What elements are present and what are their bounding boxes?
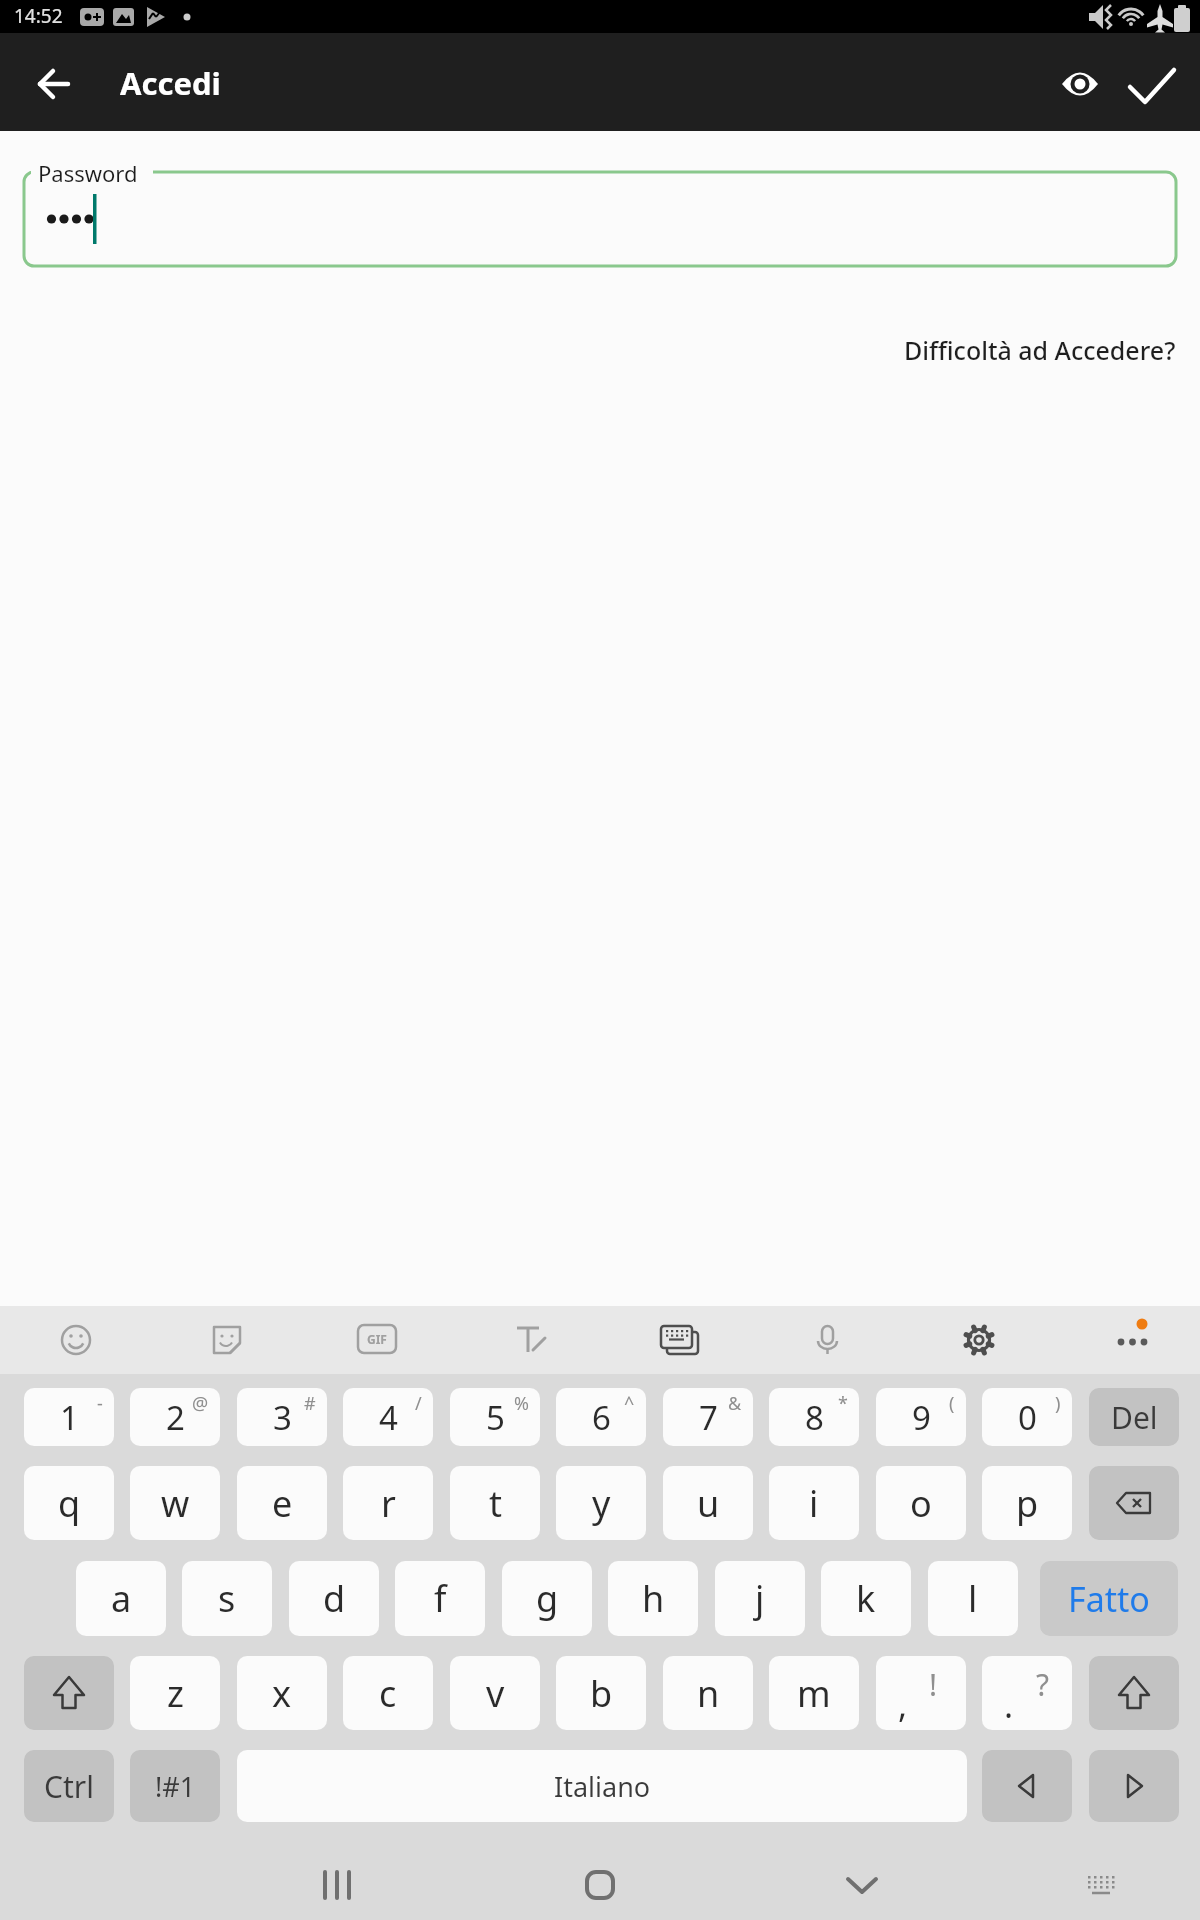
button[interactable]: s	[182, 1561, 272, 1636]
staticText: d	[323, 1574, 346, 1623]
staticText: 1	[60, 1395, 79, 1440]
staticText: Del	[1111, 1397, 1158, 1438]
staticText: c	[379, 1669, 397, 1718]
staticText: h	[642, 1574, 665, 1623]
staticText: q	[58, 1479, 81, 1528]
button[interactable]: 1	[24, 1388, 114, 1446]
button[interactable]: Fatto	[1040, 1561, 1178, 1636]
button[interactable]: m	[769, 1656, 859, 1730]
staticText: 8	[805, 1395, 824, 1440]
staticText: (	[949, 1391, 955, 1416]
button[interactable]: Ctrl	[24, 1750, 114, 1822]
staticText: %	[514, 1391, 529, 1416]
staticText: n	[697, 1669, 720, 1718]
staticText: !	[929, 1664, 938, 1705]
staticText: z	[167, 1669, 184, 1718]
button[interactable]: h	[608, 1561, 698, 1636]
staticText: #	[304, 1391, 316, 1416]
button[interactable]: ,	[876, 1656, 966, 1730]
button[interactable]: t	[450, 1466, 540, 1540]
button[interactable]: 4	[343, 1388, 433, 1446]
staticText: f	[434, 1574, 447, 1623]
staticText: 4	[379, 1395, 398, 1440]
button[interactable]: e	[237, 1466, 327, 1540]
button[interactable]: n	[663, 1656, 753, 1730]
button[interactable]	[24, 1656, 114, 1730]
button[interactable]: z	[130, 1656, 220, 1730]
button[interactable]: k	[821, 1561, 911, 1636]
staticText: Accedi	[120, 62, 221, 104]
staticText: GIF	[367, 1331, 387, 1347]
staticText: r	[381, 1479, 396, 1528]
button[interactable]: 0	[982, 1388, 1072, 1446]
staticText: j	[755, 1574, 765, 1623]
staticText: *	[838, 1391, 848, 1416]
button[interactable]: Del	[1089, 1388, 1179, 1446]
staticText: t	[489, 1479, 502, 1528]
button[interactable]: 5	[450, 1388, 540, 1446]
button[interactable]: 3	[237, 1388, 327, 1446]
button[interactable]: 2	[130, 1388, 220, 1446]
staticText: w	[161, 1479, 190, 1528]
staticText: i	[809, 1479, 819, 1528]
staticText: Difficoltà ad Accedere?	[904, 333, 1176, 367]
staticText: o	[910, 1479, 932, 1528]
staticText: v	[486, 1669, 505, 1718]
button[interactable]: a	[76, 1561, 166, 1636]
staticText: /	[415, 1391, 422, 1416]
button[interactable]: r	[343, 1466, 433, 1540]
button[interactable]: Italiano	[237, 1750, 967, 1822]
staticText: 0	[1018, 1395, 1037, 1440]
button[interactable]: d	[289, 1561, 379, 1636]
button[interactable]	[1089, 1466, 1179, 1540]
staticText: &	[728, 1391, 742, 1416]
button[interactable]: 8	[769, 1388, 859, 1446]
staticText: Fatto	[1068, 1576, 1150, 1622]
staticText: Italiano	[554, 1768, 651, 1805]
button[interactable]: 7	[663, 1388, 753, 1446]
staticText: ,	[898, 1682, 908, 1728]
button[interactable]: v	[450, 1656, 540, 1730]
button[interactable]: Difficoltà ad Accedere?	[700, 328, 1176, 372]
button[interactable]: w	[130, 1466, 220, 1540]
button[interactable]: i	[769, 1466, 859, 1540]
staticText: )	[1055, 1391, 1061, 1416]
button[interactable]: x	[237, 1656, 327, 1730]
button[interactable]: c	[343, 1656, 433, 1730]
button[interactable]: .	[982, 1656, 1072, 1730]
button[interactable]: 6	[556, 1388, 646, 1446]
staticText: 2	[166, 1395, 185, 1440]
staticText: e	[272, 1479, 293, 1528]
button[interactable]: b	[556, 1656, 646, 1730]
button[interactable]: g	[502, 1561, 592, 1636]
staticText: g	[536, 1574, 559, 1623]
button[interactable]: !#1	[130, 1750, 220, 1822]
button[interactable]	[1089, 1750, 1179, 1822]
button[interactable]: f	[395, 1561, 485, 1636]
staticText: u	[697, 1479, 720, 1528]
button[interactable]: y	[556, 1466, 646, 1540]
staticText: s	[218, 1574, 236, 1623]
button[interactable]	[1128, 60, 1176, 108]
button[interactable]: 9	[876, 1388, 966, 1446]
button[interactable]	[30, 60, 78, 108]
button[interactable]: o	[876, 1466, 966, 1540]
button[interactable]: l	[928, 1561, 1018, 1636]
staticText: 3	[273, 1395, 292, 1440]
staticText: .	[1004, 1682, 1014, 1728]
button[interactable]: p	[982, 1466, 1072, 1540]
staticText: 9	[912, 1395, 931, 1440]
staticText: k	[856, 1574, 876, 1623]
button[interactable]	[1056, 60, 1104, 108]
staticText: y	[592, 1479, 611, 1528]
button[interactable]: u	[663, 1466, 753, 1540]
button[interactable]: q	[24, 1466, 114, 1540]
button[interactable]	[1089, 1656, 1179, 1730]
staticText: a	[111, 1574, 132, 1623]
staticText: m	[797, 1669, 831, 1718]
button[interactable]	[982, 1750, 1072, 1822]
staticText: ?	[1036, 1664, 1050, 1705]
staticText: !#1	[155, 1768, 196, 1805]
staticText: 14:52	[14, 3, 63, 29]
button[interactable]: j	[715, 1561, 805, 1636]
